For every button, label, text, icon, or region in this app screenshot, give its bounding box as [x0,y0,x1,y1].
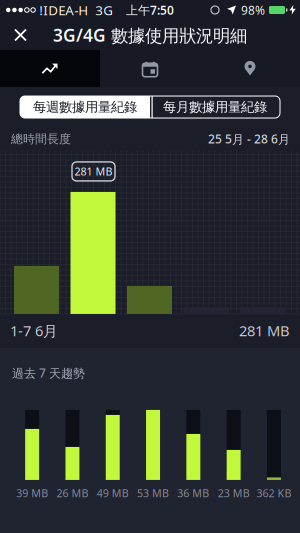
staticText: 每週數據用量紀錄 [33,99,137,115]
staticText: 98% [241,2,265,18]
staticText: 26 MB [56,486,88,500]
staticText: !IDEA-H [39,1,88,19]
button[interactable]: Monthly data usage [150,96,280,118]
staticText: 上午7:50 [126,2,174,18]
staticText: 23 MB [218,486,250,500]
staticText: 3G/4G 數據使用狀況明細 [53,23,247,46]
button[interactable]: Usage chart [0,50,100,87]
button[interactable]: Location [200,50,300,87]
staticText: 過去 7 天趨勢 [12,365,85,381]
staticText: 每月數據用量紀錄 [163,99,267,115]
staticText: 39 MB [16,486,48,500]
staticText: 362 KB [256,486,291,500]
button[interactable]: Weekly data usage [20,96,150,118]
button[interactable]: Close [0,20,26,49]
staticText: 53 MB [137,486,169,500]
staticText: 49 MB [97,486,129,500]
staticText: 1-7 6月 [10,321,58,340]
staticText: 281 MB [239,321,290,340]
staticText: 25 5月 - 28 6月 [208,131,290,147]
button[interactable]: Calendar [100,50,200,87]
staticText: 總時間長度 [11,132,71,146]
staticText: 36 MB [177,486,209,500]
staticText: 3G [95,1,113,19]
staticText: 281 MB [74,164,112,179]
